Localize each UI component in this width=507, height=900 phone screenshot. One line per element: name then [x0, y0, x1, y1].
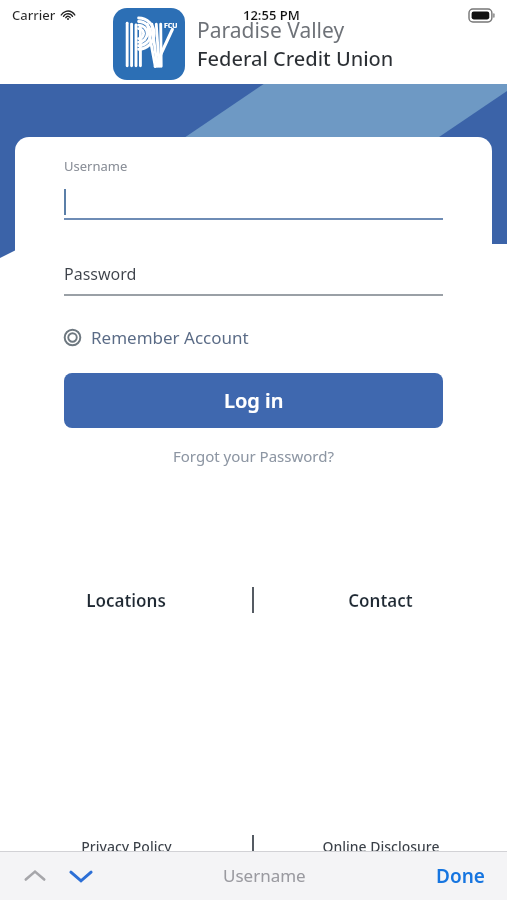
staticText: Log in [224, 387, 284, 414]
staticText: FCU [164, 21, 178, 31]
button[interactable]: Remember Account [64, 326, 249, 349]
button[interactable]: Previous field [14, 855, 56, 897]
staticText: Federal Credit Union [197, 45, 394, 72]
button[interactable]: Locations [0, 583, 252, 617]
button[interactable]: Contact [254, 583, 507, 617]
button[interactable]: Done [428, 857, 493, 895]
staticText: Password [64, 263, 137, 285]
staticText: Contact [348, 589, 413, 612]
button[interactable]: Log in [64, 373, 443, 428]
button[interactable]: Online Disclosure [254, 833, 507, 859]
staticText: Username [64, 157, 128, 175]
staticText: Username [223, 864, 306, 887]
staticText: Carrier [12, 6, 56, 24]
staticText: Locations [86, 589, 166, 612]
staticText: Remember Account [91, 326, 249, 349]
button[interactable]: Next field [60, 855, 102, 897]
staticText: Privacy Policy [81, 837, 172, 856]
staticText: Online Disclosure [322, 837, 440, 856]
staticText: 12:55 PM [243, 6, 300, 24]
staticText: Done [436, 863, 485, 889]
staticText: Forgot your Password? [173, 446, 334, 466]
button[interactable]: Forgot your Password? [64, 442, 443, 470]
staticText: Paradise Valley [197, 16, 345, 45]
button[interactable] [64, 186, 443, 218]
button[interactable]: Privacy Policy [0, 833, 252, 859]
button[interactable]: Password [64, 261, 443, 287]
